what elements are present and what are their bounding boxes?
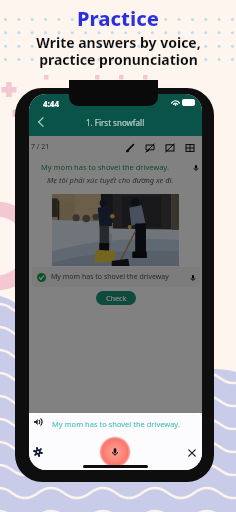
button[interactable]: Play audio — [30, 414, 46, 430]
button[interactable]: My mom has to shovel the driveway — [32, 267, 200, 287]
staticText: My mom has to shovel the driveway. — [52, 419, 180, 429]
staticText: 4:44 — [43, 98, 59, 109]
button[interactable]: Keyboard — [183, 141, 196, 154]
staticText: Check — [106, 293, 127, 303]
button[interactable]: Check — [96, 291, 136, 305]
button[interactable]: Hide image — [163, 141, 176, 154]
staticText: Write answers by voice, practice pronunc… — [36, 33, 201, 69]
staticText: My mom has to shovel the driveway — [51, 272, 185, 282]
button[interactable]: Back — [29, 111, 51, 133]
staticText: 7 / 21 — [31, 142, 50, 152]
button[interactable]: Edit — [123, 141, 136, 154]
button[interactable]: Hide translation — [143, 141, 156, 154]
button[interactable]: Close — [184, 445, 200, 461]
button[interactable]: Listen — [189, 161, 202, 174]
button[interactable]: Record — [99, 436, 131, 468]
button[interactable]: Settings — [30, 444, 46, 460]
staticText: Practice — [77, 5, 159, 32]
staticText: My mom has to shovel the driveway. — [41, 162, 189, 172]
staticText: 1. First snowfall — [86, 117, 145, 128]
staticText: Mẹ tôi phải xúc tuyết cho đường xe đi. — [47, 175, 174, 185]
